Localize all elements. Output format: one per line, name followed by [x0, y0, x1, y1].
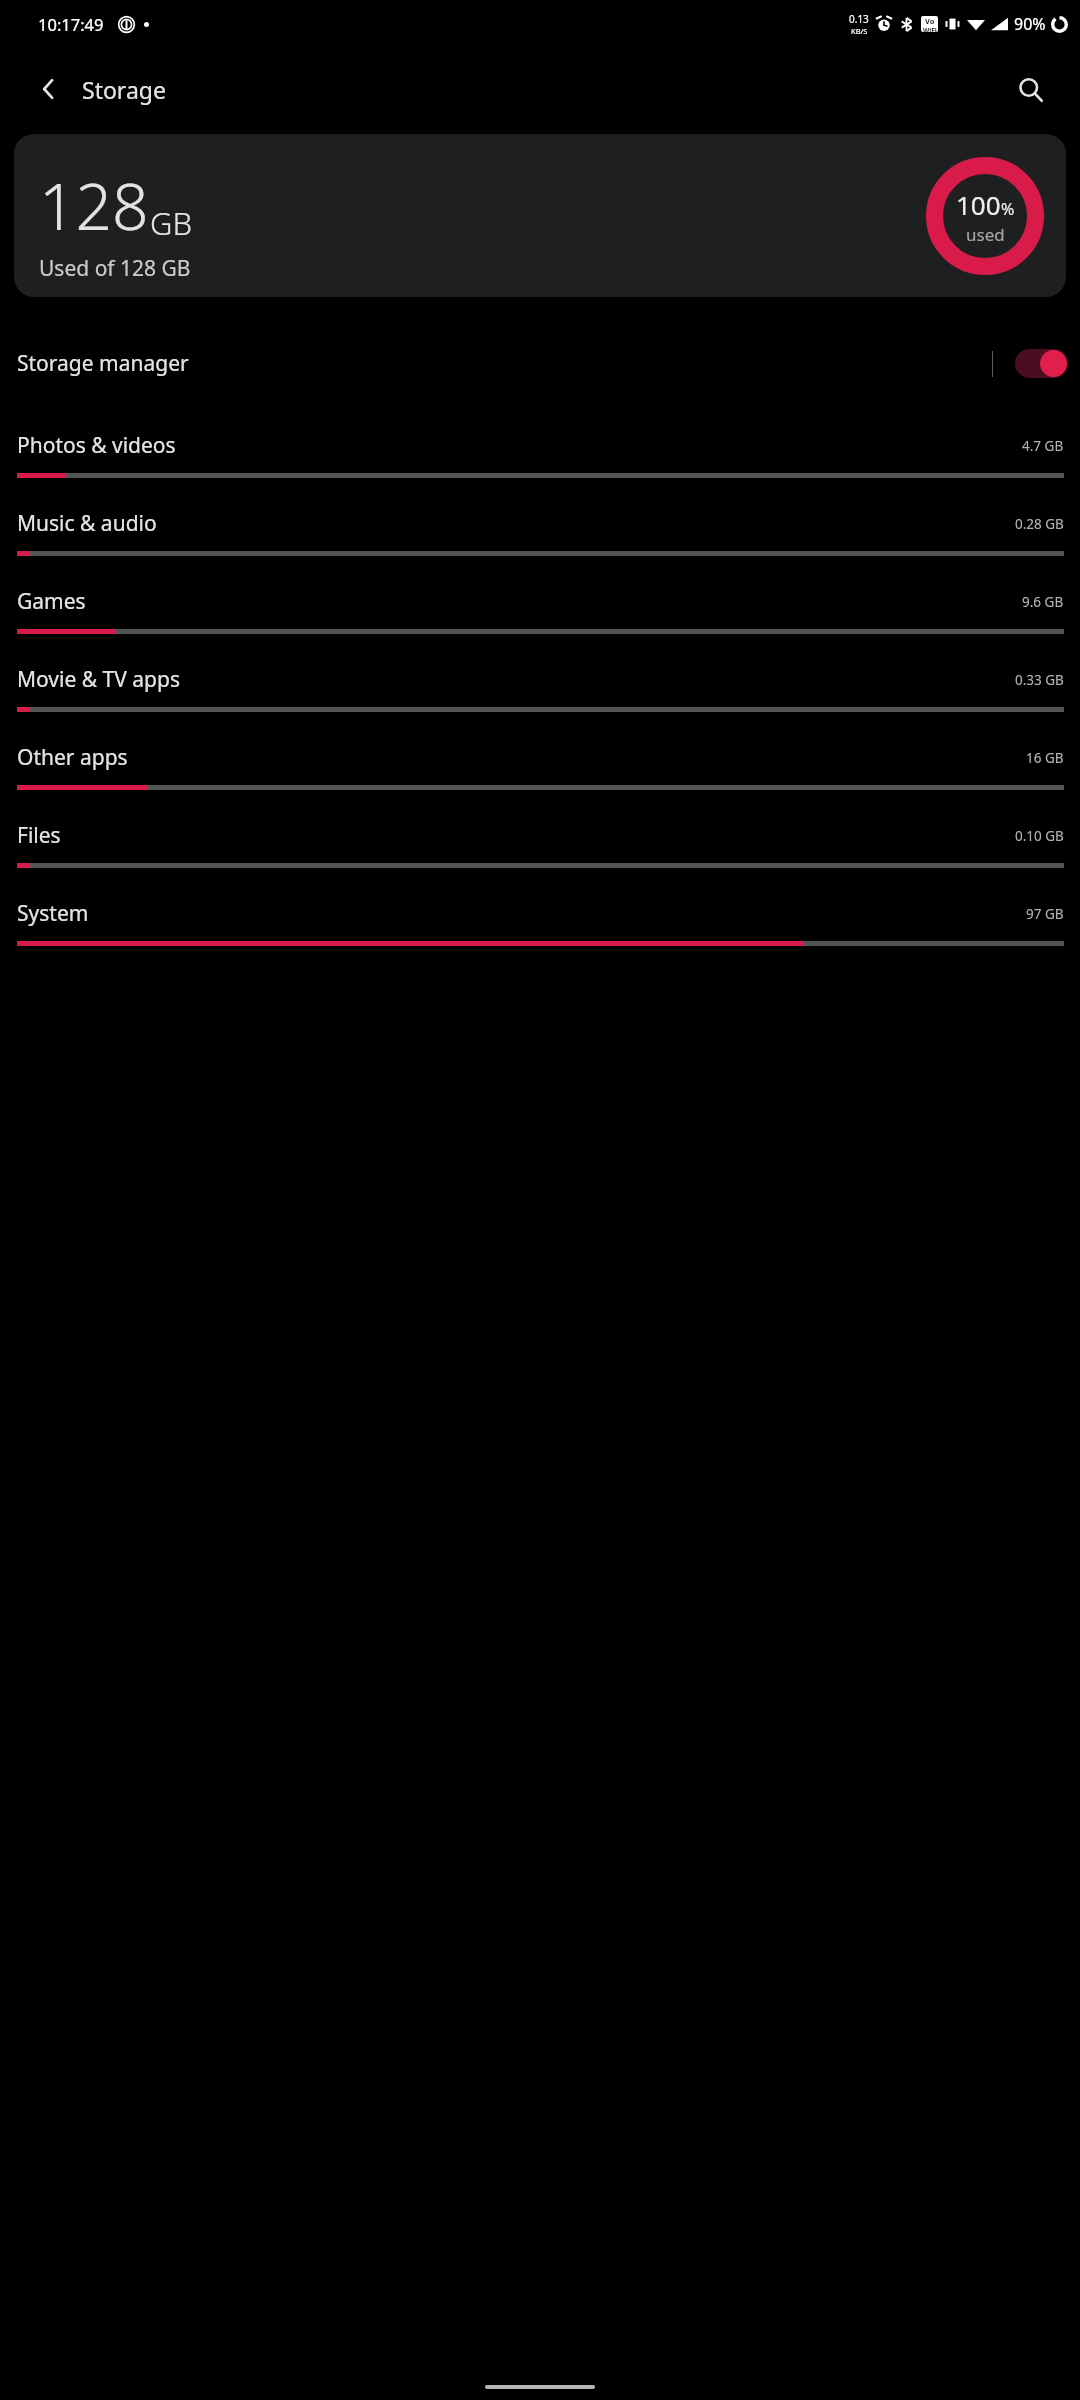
- staticText: 0.28 GB: [1015, 515, 1064, 533]
- staticText: 0.33 GB: [1015, 671, 1064, 689]
- staticText: 9.6 GB: [1022, 593, 1064, 611]
- button[interactable]: Search: [1004, 63, 1056, 115]
- staticText: 16 GB: [1026, 749, 1064, 767]
- button[interactable]: Storage manager toggle: [1015, 349, 1068, 378]
- staticText: 128: [39, 162, 149, 249]
- button[interactable]: Files: [0, 811, 1080, 889]
- staticText: 4.7 GB: [1022, 437, 1064, 455]
- button[interactable]: Games: [0, 577, 1080, 655]
- staticText: Storage manager: [17, 349, 189, 378]
- staticText: 97 GB: [1026, 905, 1064, 923]
- staticText: 100: [956, 187, 1001, 222]
- staticText: Photos & videos: [17, 431, 176, 460]
- staticText: GB: [150, 202, 193, 244]
- staticText: 0.13: [849, 12, 869, 26]
- button[interactable]: 128: [14, 134, 1066, 297]
- staticText: Files: [17, 821, 61, 850]
- staticText: 0.10 GB: [1015, 827, 1064, 845]
- staticText: WiFi: [923, 26, 937, 32]
- staticText: Other apps: [17, 743, 128, 772]
- button[interactable]: Back: [26, 66, 72, 112]
- button[interactable]: Movie & TV apps: [0, 655, 1080, 733]
- button[interactable]: Storage manager: [0, 327, 1080, 399]
- staticText: Movie & TV apps: [17, 665, 180, 694]
- staticText: Used of 128 GB: [39, 254, 191, 283]
- staticText: System: [17, 899, 89, 928]
- button[interactable]: Music & audio: [0, 499, 1080, 577]
- staticText: used: [966, 223, 1005, 246]
- staticText: 10:17:49: [38, 13, 104, 35]
- staticText: Music & audio: [17, 509, 157, 538]
- button[interactable]: Other apps: [0, 733, 1080, 811]
- button[interactable]: System: [0, 889, 1080, 967]
- staticText: Games: [17, 587, 86, 616]
- staticText: KB/S: [851, 26, 868, 36]
- button[interactable]: Photos & videos: [0, 421, 1080, 499]
- staticText: %: [1001, 198, 1015, 220]
- staticText: 90%: [1014, 13, 1046, 35]
- staticText: Storage: [82, 74, 166, 105]
- staticText: Vo: [925, 16, 935, 26]
